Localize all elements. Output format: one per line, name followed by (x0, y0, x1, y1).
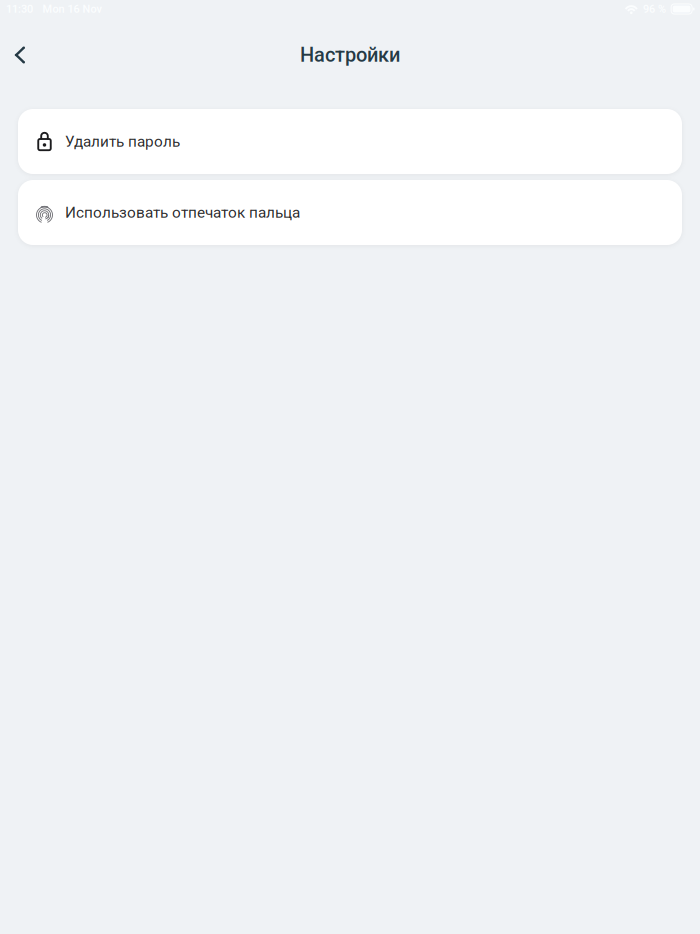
button[interactable]: Удалить пароль (18, 109, 682, 174)
button[interactable]: Использовать отпечаток пальца (18, 180, 682, 245)
staticText: 11:30 (6, 3, 33, 15)
staticText: 96 % (643, 3, 666, 15)
staticText: Использовать отпечаток пальца (65, 203, 300, 221)
staticText: Удалить пароль (65, 132, 180, 150)
staticText: Mon 16 Nov (42, 3, 101, 15)
staticText: Настройки (300, 43, 400, 67)
button[interactable]: Back (0, 30, 46, 80)
